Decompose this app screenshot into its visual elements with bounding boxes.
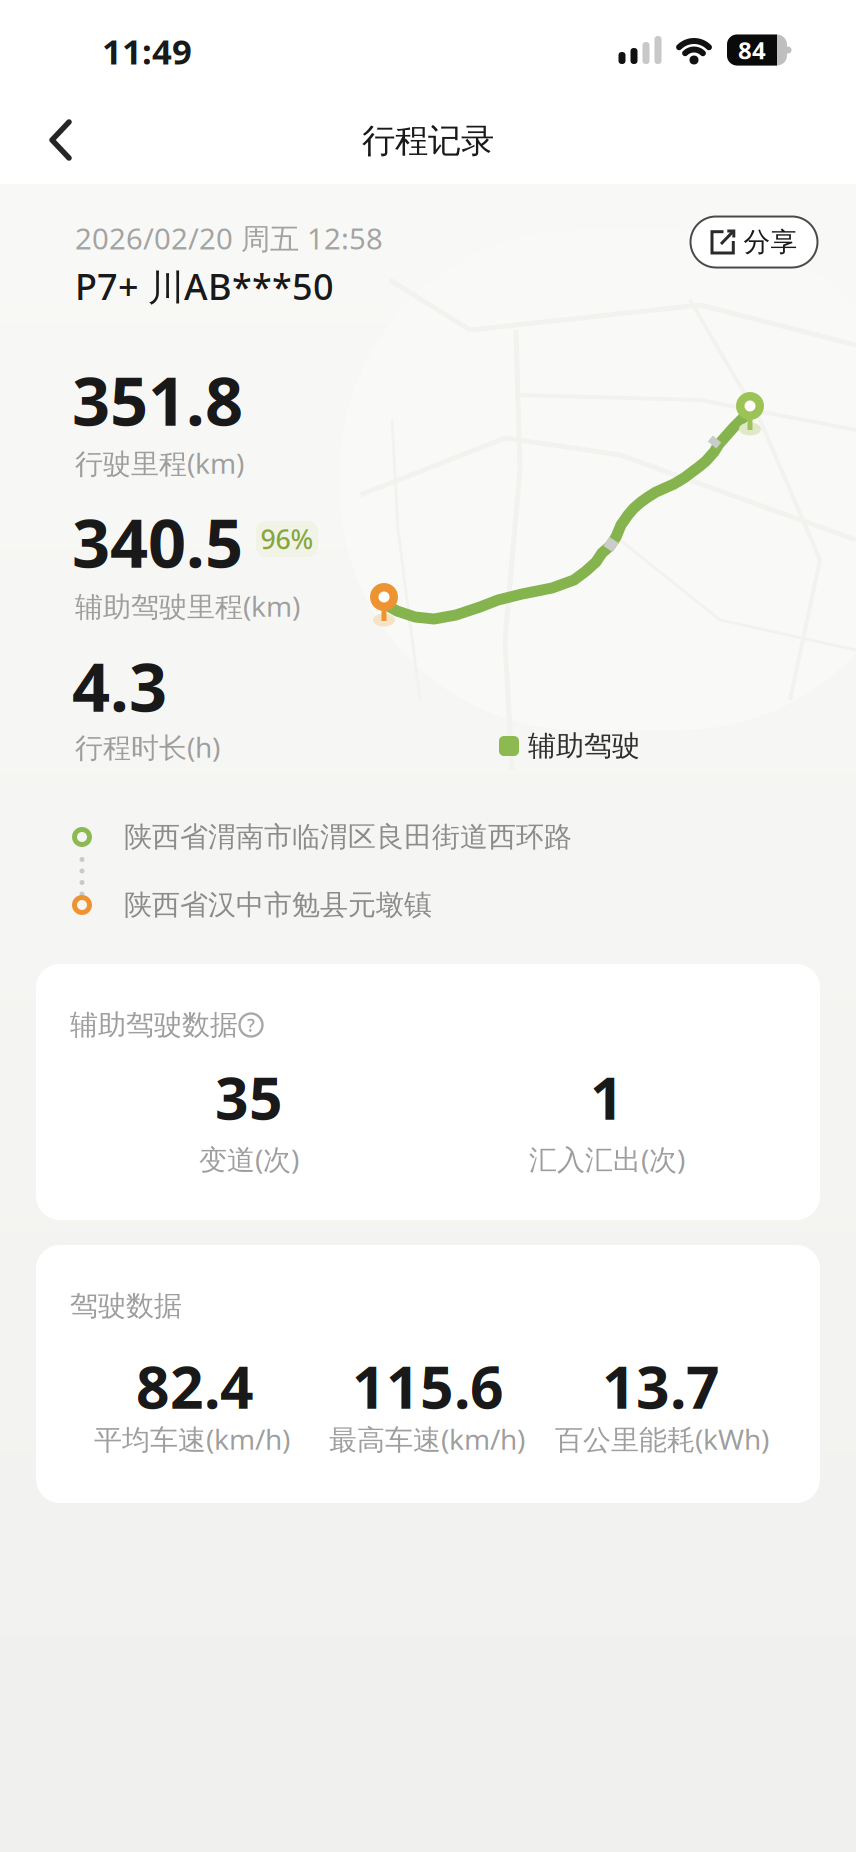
- staticText: 陕西省渭南市临渭区良田街道西环路: [124, 820, 572, 854]
- staticText: 96%: [260, 521, 313, 557]
- staticText: 分享: [743, 226, 797, 258]
- button[interactable]: 辅助驾驶数据说明: [236, 1010, 266, 1040]
- staticText: 行程记录: [362, 120, 494, 161]
- staticText: 84: [738, 34, 766, 66]
- staticText: 82.4: [136, 1347, 254, 1425]
- staticText: 行程时长(h): [75, 728, 220, 766]
- staticText: 115.6: [352, 1347, 504, 1425]
- staticText: 11:49: [102, 28, 192, 74]
- staticText: 陕西省汉中市勉县元墩镇: [124, 888, 432, 922]
- staticText: P7+ 川AB***50: [75, 262, 334, 310]
- staticText: 辅助驾驶数据: [70, 1008, 238, 1042]
- staticText: 驾驶数据: [70, 1289, 182, 1323]
- staticText: 变道(次): [199, 1140, 299, 1178]
- staticText: 行驶里程(km): [75, 444, 244, 482]
- staticText: 最高车速(km/h): [329, 1420, 525, 1458]
- staticText: 辅助驾驶: [528, 729, 640, 763]
- staticText: 13.7: [602, 1347, 720, 1425]
- staticText: 1: [590, 1058, 624, 1136]
- staticText: 340.5: [72, 498, 243, 586]
- staticText: 辅助驾驶里程(km): [75, 587, 300, 625]
- staticText: 35: [215, 1058, 283, 1136]
- staticText: ?: [247, 1013, 255, 1036]
- button[interactable]: 返回: [39, 115, 89, 165]
- staticText: 汇入汇出(次): [529, 1140, 685, 1178]
- staticText: 4.3: [72, 642, 167, 730]
- button[interactable]: 分享: [690, 216, 817, 267]
- staticText: 平均车速(km/h): [94, 1420, 290, 1458]
- staticText: 351.8: [72, 356, 243, 444]
- staticText: 2026/02/20 周五 12:58: [75, 218, 383, 257]
- staticText: 百公里能耗(kWh): [555, 1420, 769, 1458]
